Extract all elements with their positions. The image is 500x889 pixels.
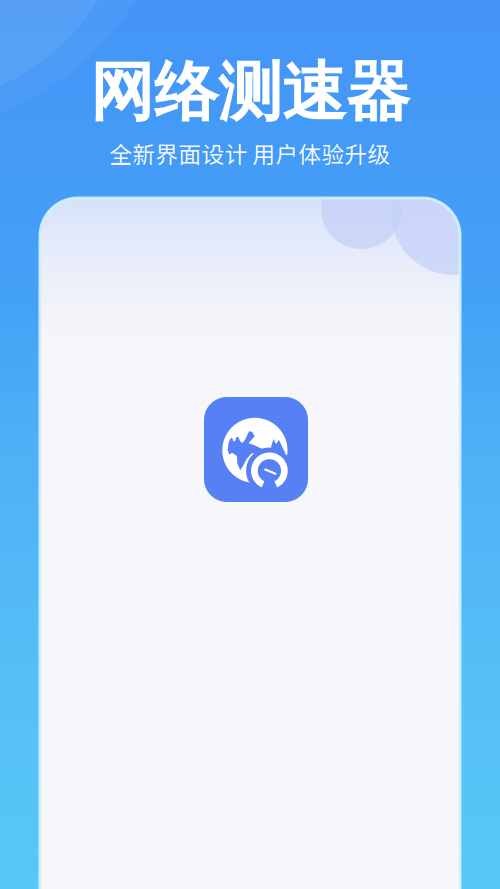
staticText: 网络测速器 [90, 52, 410, 133]
button[interactable]: 网络测速器 [204, 397, 308, 502]
staticText: 全新界面设计 用户体验升级 [109, 137, 390, 169]
